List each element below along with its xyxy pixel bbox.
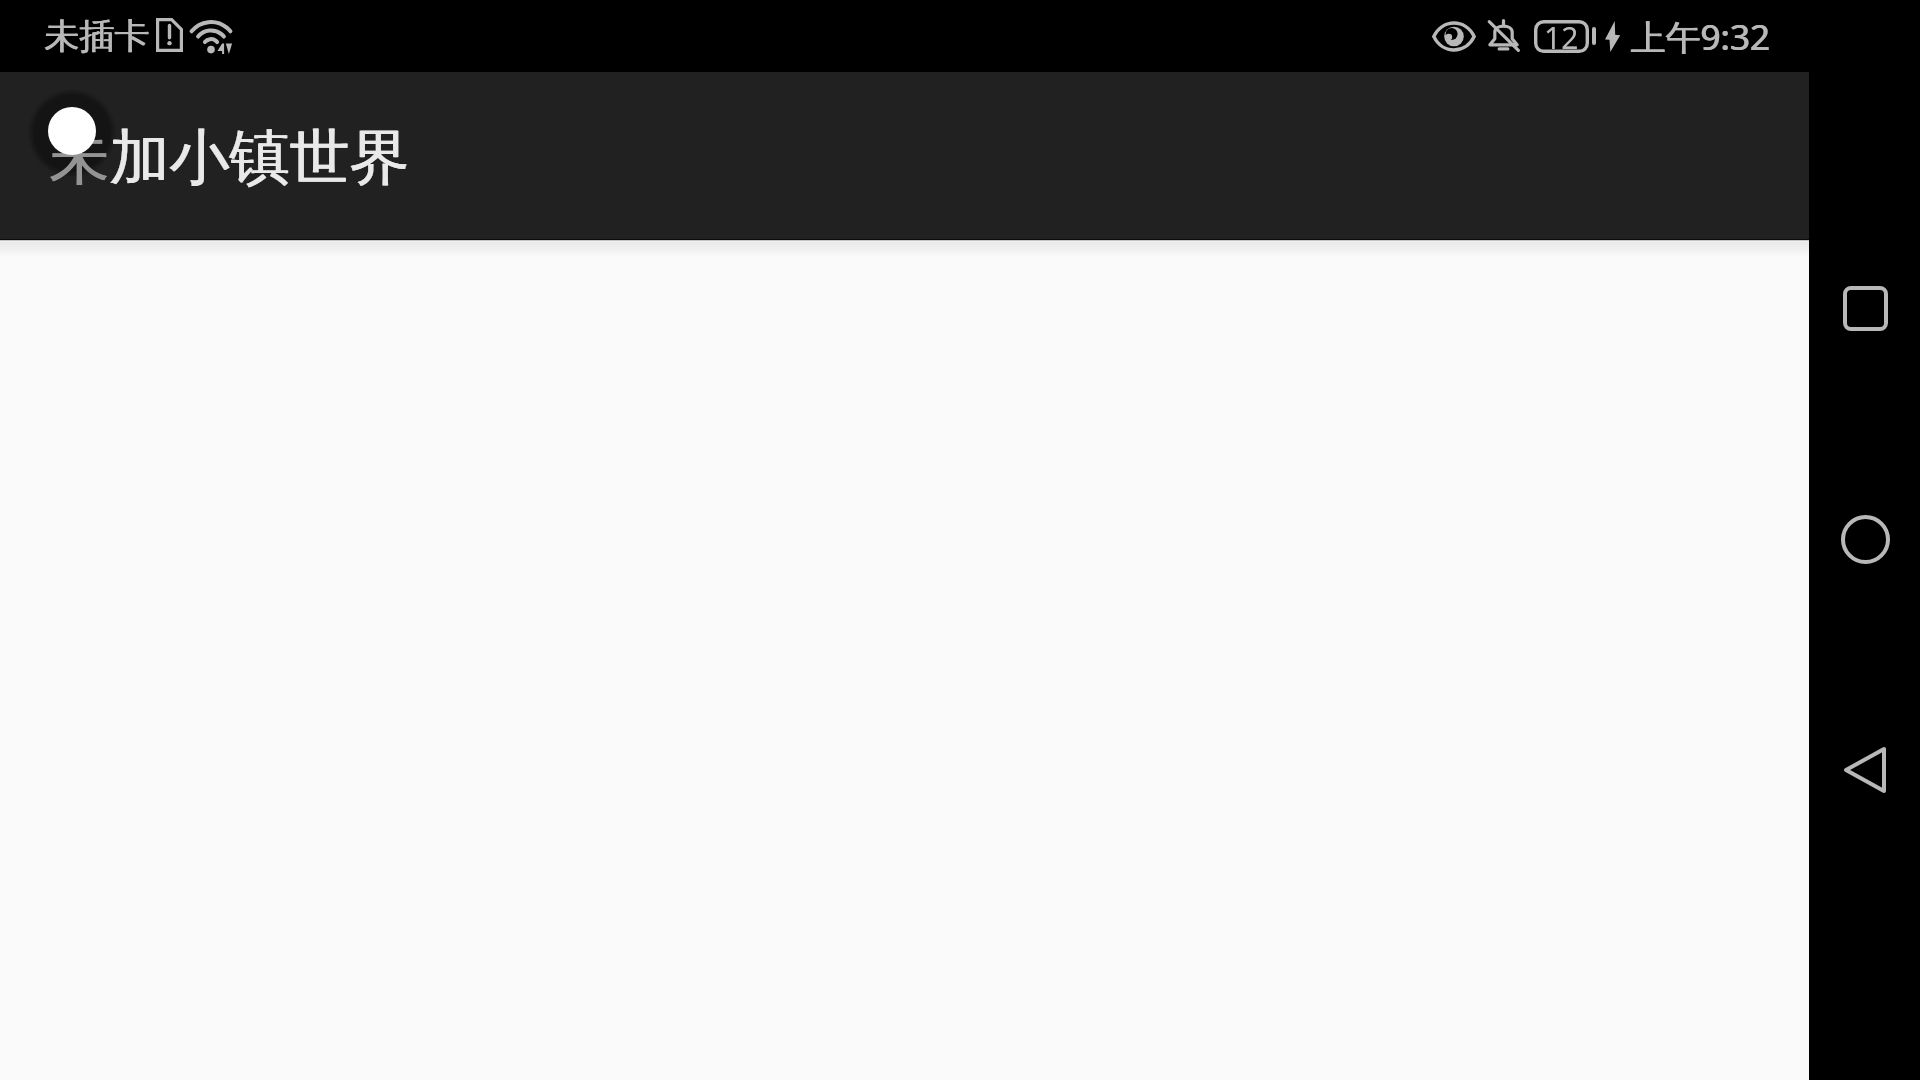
staticText: 上午9:32 bbox=[1630, 13, 1770, 61]
staticText: 未 bbox=[50, 120, 110, 196]
staticText: 未插卡 bbox=[45, 14, 150, 58]
staticText: 未 bbox=[49, 120, 109, 196]
button[interactable]: Recent apps bbox=[1825, 268, 1905, 348]
staticText: 加小镇世界 bbox=[109, 120, 409, 196]
button[interactable]: Back bbox=[1825, 730, 1905, 810]
staticText: 12 bbox=[1544, 17, 1579, 50]
staticText: 上午9:32 bbox=[1631, 13, 1771, 61]
button[interactable]: Home bbox=[1825, 499, 1905, 579]
staticText: 未插卡 bbox=[44, 14, 149, 58]
staticText: 加小镇世界 bbox=[110, 120, 410, 196]
